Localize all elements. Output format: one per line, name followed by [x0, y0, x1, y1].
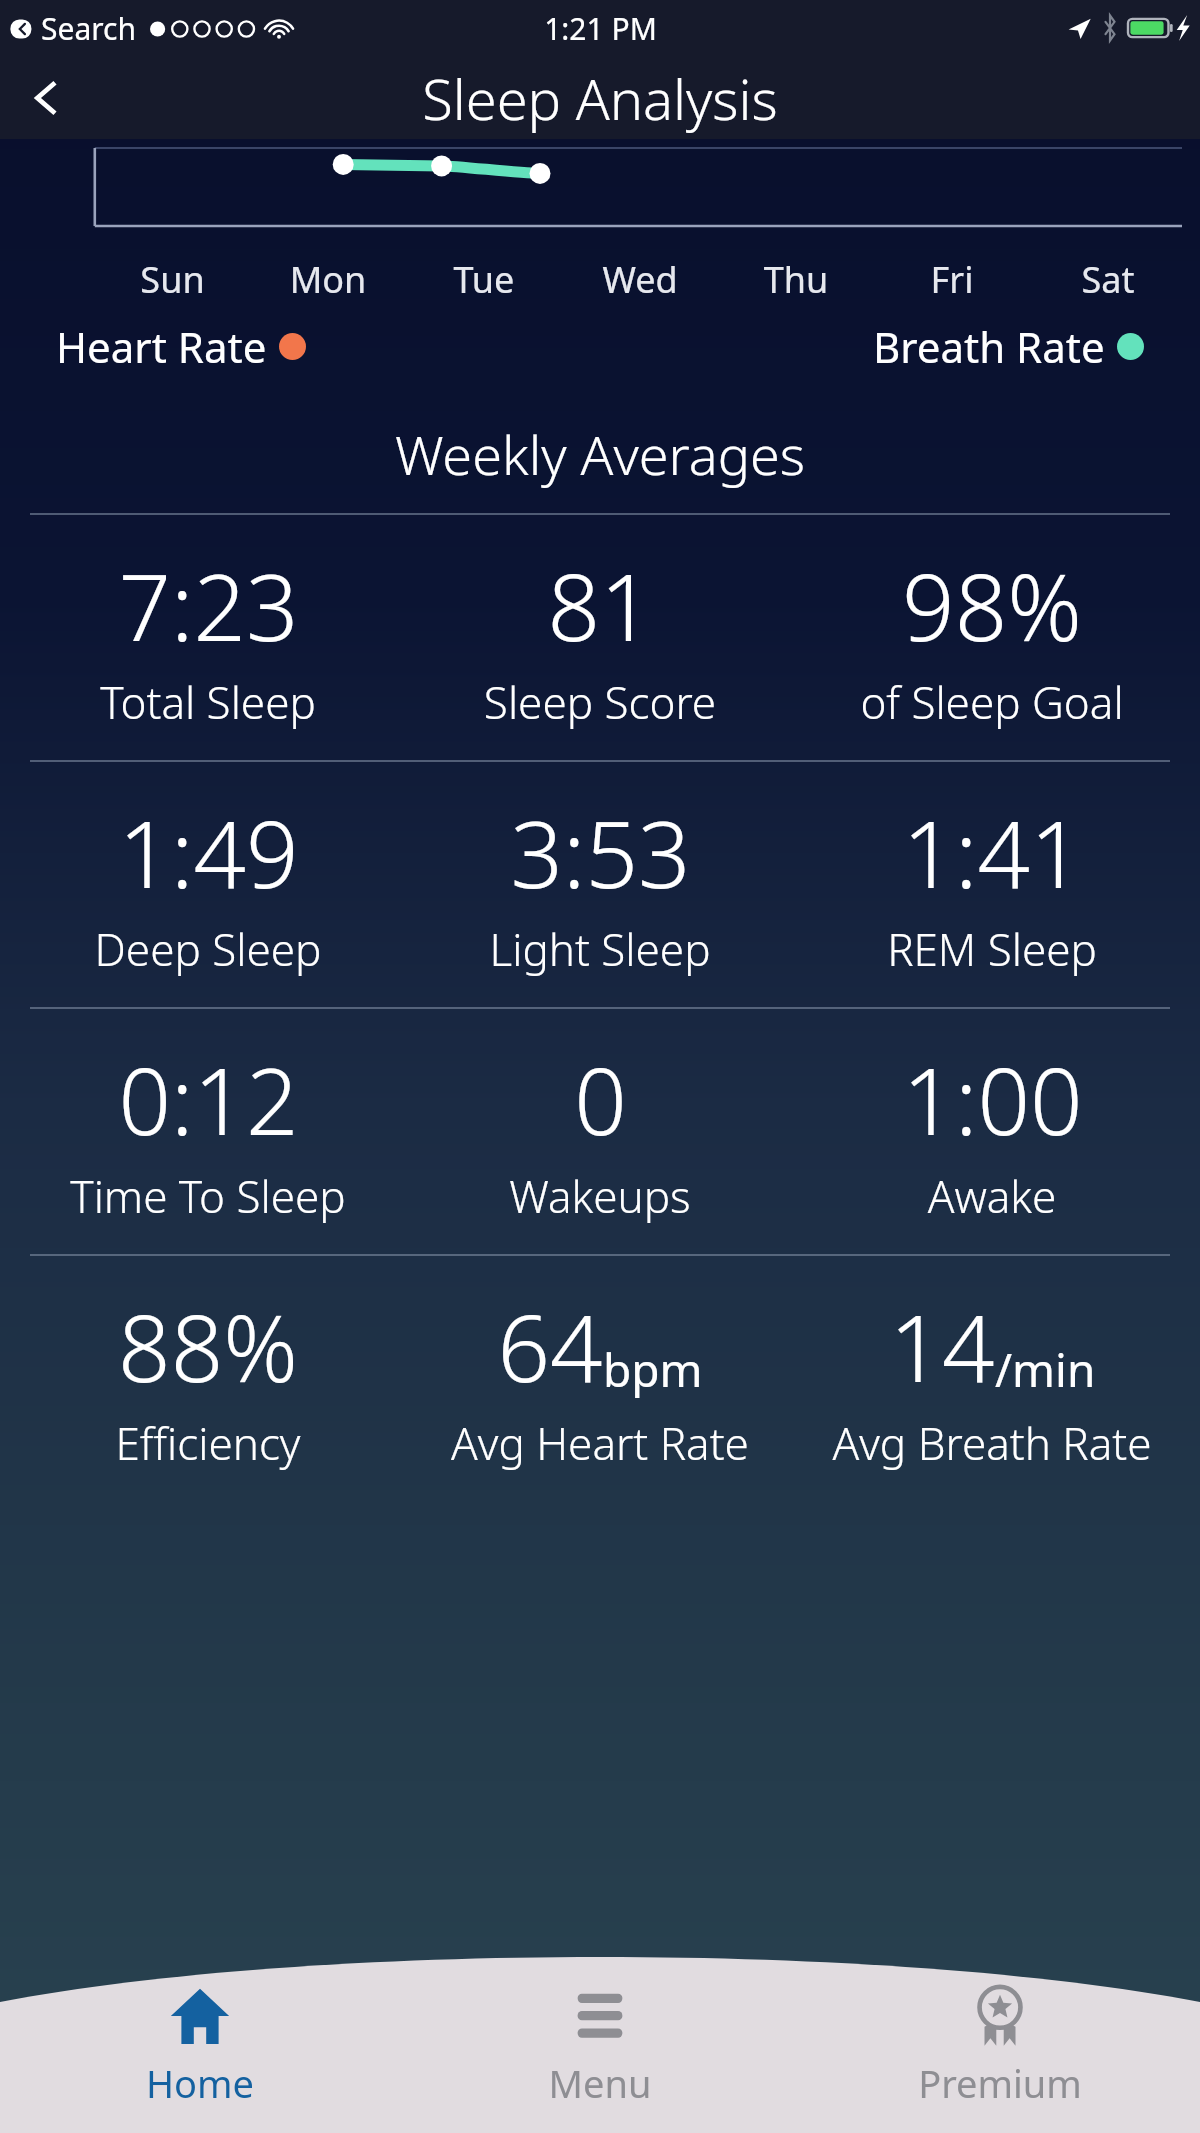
- staticText: Sat: [1030, 255, 1186, 304]
- staticText: Awake: [796, 1166, 1188, 1226]
- staticText: Wakeups: [404, 1166, 796, 1226]
- staticText: Sleep Score: [404, 672, 796, 732]
- button[interactable]: Menu: [400, 1985, 800, 2133]
- staticText: Thu: [718, 255, 874, 304]
- staticText: 3:53: [510, 790, 691, 915]
- staticText: of Sleep Goal: [796, 672, 1188, 732]
- staticText: 7:23: [118, 543, 299, 668]
- button[interactable]: Home: [0, 1985, 400, 2133]
- staticText: 1:41: [902, 790, 1083, 915]
- button[interactable]: 88%: [12, 1256, 404, 1501]
- staticText: bpm: [603, 1338, 703, 1401]
- button[interactable]: 0:12: [12, 1009, 404, 1254]
- staticText: 14: [889, 1284, 995, 1409]
- staticText: REM Sleep: [796, 919, 1188, 979]
- staticText: Weekly Averages: [0, 417, 1200, 491]
- staticText: Heart Rate: [56, 318, 267, 375]
- staticText: 88%: [118, 1284, 298, 1409]
- button[interactable]: 14: [796, 1256, 1188, 1501]
- staticText: 0: [574, 1037, 627, 1162]
- button[interactable]: 0: [404, 1009, 796, 1254]
- staticText: Sleep Analysis: [422, 60, 778, 136]
- button[interactable]: 64: [404, 1256, 796, 1501]
- staticText: 0:12: [118, 1037, 299, 1162]
- staticText: Menu: [400, 2057, 800, 2109]
- staticText: 1:49: [118, 790, 299, 915]
- staticText: Time To Sleep: [12, 1166, 404, 1226]
- staticText: Deep Sleep: [12, 919, 404, 979]
- button[interactable]: Premium: [800, 1985, 1200, 2133]
- staticText: Avg Breath Rate: [796, 1413, 1188, 1473]
- staticText: Efficiency: [12, 1413, 404, 1473]
- staticText: /min: [995, 1338, 1096, 1401]
- button[interactable]: 1:00: [796, 1009, 1188, 1254]
- button[interactable]: Back: [18, 69, 76, 127]
- staticText: Fri: [874, 255, 1030, 304]
- staticText: 64: [497, 1284, 603, 1409]
- staticText: Mon: [250, 255, 406, 304]
- staticText: Avg Heart Rate: [404, 1413, 796, 1473]
- staticText: Light Sleep: [404, 919, 796, 979]
- button[interactable]: 98%: [796, 515, 1188, 760]
- button[interactable]: 1:41: [796, 762, 1188, 1007]
- staticText: 1:21 PM: [544, 8, 657, 49]
- staticText: Search: [41, 8, 136, 49]
- staticText: 81: [547, 543, 653, 668]
- staticText: 98%: [902, 543, 1082, 668]
- staticText: Home: [0, 2057, 400, 2109]
- button[interactable]: 81: [404, 515, 796, 760]
- button[interactable]: 7:23: [12, 515, 404, 760]
- staticText: Sun: [95, 255, 250, 304]
- staticText: Total Sleep: [12, 672, 404, 732]
- button[interactable]: 1:49: [12, 762, 404, 1007]
- staticText: Premium: [800, 2057, 1200, 2109]
- staticText: Breath Rate: [873, 318, 1105, 375]
- staticText: Tue: [406, 255, 562, 304]
- button[interactable]: 3:53: [404, 762, 796, 1007]
- staticText: 1:00: [902, 1037, 1083, 1162]
- staticText: Wed: [562, 255, 718, 304]
